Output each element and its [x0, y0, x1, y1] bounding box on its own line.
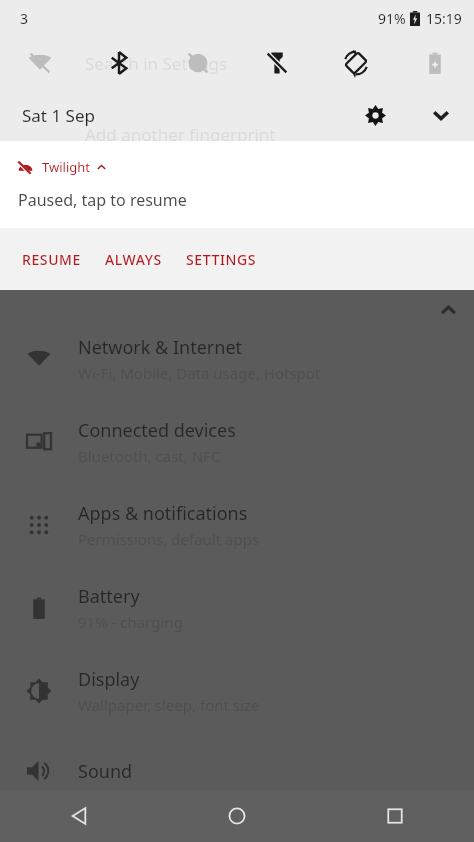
- button[interactable]: Bluetooth: [79, 38, 158, 88]
- button[interactable]: Back: [53, 790, 105, 842]
- staticText: Wi-Fi, Mobile, Data usage, Hotspot: [78, 363, 321, 383]
- staticText: 15:19: [426, 9, 462, 28]
- staticText: Sat 1 Sep: [22, 104, 95, 127]
- staticText: Apps & notifications: [78, 501, 248, 526]
- button[interactable]: Battery saver: [395, 38, 474, 88]
- staticText: Connected devices: [78, 418, 236, 443]
- staticText: Twilight: [42, 158, 90, 176]
- button[interactable]: Expand quick settings: [418, 92, 464, 138]
- staticText: Display: [78, 667, 140, 692]
- staticText: 91%: [378, 9, 406, 28]
- button[interactable]: Collapse: [428, 290, 468, 330]
- staticText: 91% - charging: [78, 612, 183, 632]
- staticText: Battery: [78, 584, 140, 609]
- button[interactable]: Home: [211, 790, 263, 842]
- staticText: Add another fingerprint: [85, 123, 276, 146]
- button[interactable]: Flashlight off: [237, 38, 316, 88]
- staticText: Network & Internet: [78, 335, 243, 360]
- button[interactable]: Settings: [352, 92, 398, 138]
- button[interactable]: Network & Internet: [0, 323, 474, 395]
- staticText: Sound: [78, 759, 133, 784]
- button[interactable]: Display: [0, 655, 474, 727]
- staticText: Bluetooth, cast, NFC: [78, 446, 221, 466]
- staticText: Search in Settings: [85, 52, 228, 75]
- staticText: SETTINGS: [186, 250, 257, 269]
- staticText: Wallpaper, sleep, font size: [78, 695, 260, 715]
- button[interactable]: Recents: [369, 790, 421, 842]
- staticText: Paused, tap to resume: [18, 189, 187, 211]
- button[interactable]: Auto rotate: [316, 38, 395, 88]
- staticText: RESUME: [22, 250, 81, 269]
- button[interactable]: Apps & notifications: [0, 489, 474, 561]
- staticText: Permissions, default apps: [78, 529, 260, 549]
- button[interactable]: Do not disturb off: [158, 38, 237, 88]
- button[interactable]: Battery: [0, 572, 474, 644]
- button[interactable]: ALWAYS: [105, 228, 162, 290]
- staticText: 3: [20, 9, 29, 28]
- button[interactable]: Sound: [0, 735, 474, 807]
- button[interactable]: Wi-Fi off: [0, 38, 79, 88]
- staticText: ALWAYS: [105, 250, 162, 269]
- button[interactable]: RESUME: [22, 228, 81, 290]
- button[interactable]: Connected devices: [0, 406, 474, 478]
- button[interactable]: SETTINGS: [186, 228, 257, 290]
- button[interactable]: Twilight: [0, 141, 474, 228]
